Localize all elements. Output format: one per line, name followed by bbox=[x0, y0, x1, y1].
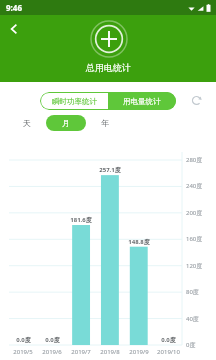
button[interactable]: 瞬时功率统计 bbox=[40, 92, 108, 110]
staticText: 181.6度 bbox=[70, 216, 92, 224]
button[interactable]: Refresh bbox=[188, 92, 205, 109]
button[interactable]: 月 bbox=[46, 115, 86, 131]
staticText: 总用电统计 bbox=[86, 62, 131, 73]
button[interactable]: 用电量统计 bbox=[108, 92, 176, 110]
staticText: 80度 bbox=[186, 288, 199, 296]
staticText: 2019/5 bbox=[13, 348, 33, 356]
staticText: 0.0度 bbox=[45, 336, 60, 344]
staticText: 0.0度 bbox=[16, 336, 31, 344]
staticText: 160度 bbox=[186, 235, 203, 243]
staticText: 240度 bbox=[186, 182, 203, 190]
staticText: 2019/7 bbox=[71, 348, 91, 356]
button[interactable]: 年 bbox=[92, 115, 118, 131]
staticText: 用电量统计 bbox=[123, 97, 161, 106]
staticText: 年 bbox=[101, 118, 109, 128]
staticText: 9:46 bbox=[6, 2, 22, 13]
staticText: 2019/6 bbox=[42, 348, 62, 356]
staticText: 148.8度 bbox=[128, 238, 150, 246]
staticText: 2019/9 bbox=[129, 348, 149, 356]
staticText: 200度 bbox=[186, 209, 203, 217]
button[interactable]: Back bbox=[3, 18, 25, 40]
staticText: 月 bbox=[62, 118, 70, 128]
button[interactable]: 天 bbox=[14, 115, 40, 131]
staticText: 0度 bbox=[186, 341, 196, 349]
staticText: 2019/8 bbox=[100, 348, 120, 356]
staticText: 瞬时功率统计 bbox=[52, 97, 97, 106]
staticText: 天 bbox=[23, 118, 31, 128]
staticText: 40度 bbox=[186, 315, 199, 323]
staticText: 120度 bbox=[186, 262, 203, 270]
staticText: 257.1度 bbox=[99, 166, 121, 174]
staticText: 0.0度 bbox=[161, 336, 176, 344]
staticText: 280度 bbox=[186, 156, 203, 164]
staticText: 2019/10 bbox=[157, 348, 180, 356]
